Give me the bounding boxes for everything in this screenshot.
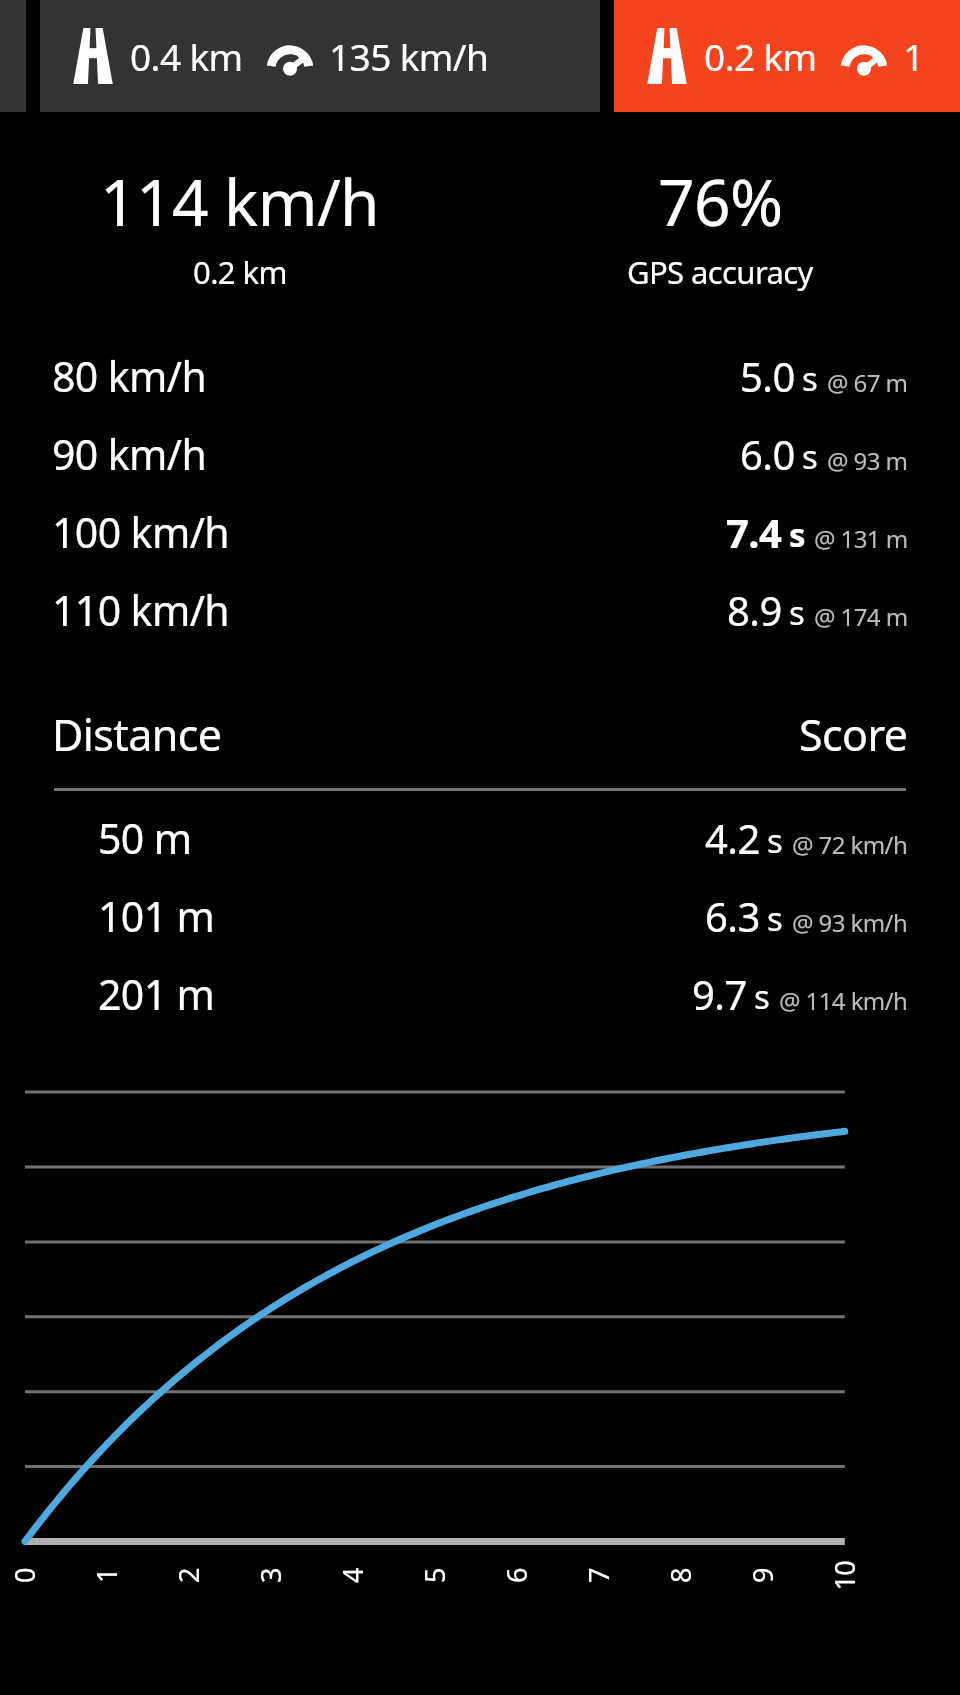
staticText: @ 93 km/h — [792, 906, 908, 939]
staticText: 80 km/h — [52, 348, 207, 404]
staticText: @ 93 m — [827, 444, 908, 477]
staticText: 135 km/h — [329, 31, 489, 81]
staticText: 4.2 — [705, 811, 760, 865]
staticText: 8.9 — [727, 583, 782, 637]
staticText: 76% — [658, 158, 783, 245]
staticText: 9.7 — [692, 967, 747, 1021]
button[interactable]: 201 m — [0, 955, 960, 1033]
staticText: 6.0 — [740, 427, 795, 481]
staticText: @ 72 km/h — [792, 828, 908, 861]
staticText: Score — [799, 705, 908, 764]
staticText: 6.3 — [705, 889, 760, 943]
button[interactable]: 101 m — [0, 877, 960, 955]
staticText: 9 — [744, 1568, 781, 1583]
staticText: 50 m — [98, 810, 192, 866]
button[interactable]: 50 m — [0, 799, 960, 877]
staticText: 0.4 km — [130, 31, 243, 81]
staticText: s — [767, 818, 783, 863]
staticText: s — [789, 512, 805, 557]
button[interactable]: 0.2 km — [614, 0, 960, 112]
staticText: 0.2 km — [704, 31, 817, 81]
staticText: GPS accuracy — [627, 251, 813, 293]
staticText: 7.4 — [726, 505, 782, 559]
staticText: @ 114 km/h — [779, 984, 908, 1017]
staticText: Distance — [52, 705, 222, 764]
staticText: 8 — [662, 1568, 699, 1583]
staticText: 0.2 km — [193, 251, 287, 293]
staticText: 110 km/h — [52, 582, 230, 638]
staticText: s — [754, 974, 770, 1019]
staticText: s — [789, 590, 805, 635]
staticText: s — [802, 356, 818, 401]
staticText: 2 — [170, 1568, 207, 1583]
staticText: 0 — [6, 1568, 43, 1583]
staticText: @ 174 m — [814, 600, 908, 633]
staticText: 201 m — [98, 966, 215, 1022]
staticText: 6 — [498, 1568, 535, 1583]
staticText: 100 km/h — [52, 504, 230, 560]
button[interactable]: 100 km/h — [0, 493, 960, 571]
staticText: 4 — [334, 1568, 371, 1583]
staticText: s — [802, 434, 818, 479]
staticText: @ 67 m — [827, 366, 908, 399]
staticText: 101 m — [98, 888, 215, 944]
staticText: 5 — [416, 1568, 453, 1583]
staticText: 90 km/h — [52, 426, 207, 482]
button[interactable]: 80 km/h — [0, 337, 960, 415]
staticText: 5.0 — [740, 349, 795, 403]
staticText: @ 131 m — [814, 522, 908, 555]
staticText: 10 — [825, 1560, 862, 1590]
button[interactable]: 90 km/h — [0, 415, 960, 493]
staticText: 7 — [580, 1568, 617, 1583]
staticText: 3 — [252, 1568, 289, 1583]
button[interactable]: 0.4 km — [40, 0, 600, 112]
staticText: s — [767, 896, 783, 941]
staticText: 1 — [903, 31, 924, 81]
staticText: 1 — [88, 1568, 125, 1583]
button[interactable]: 110 km/h — [0, 571, 960, 649]
staticText: 114 km/h — [100, 158, 380, 245]
